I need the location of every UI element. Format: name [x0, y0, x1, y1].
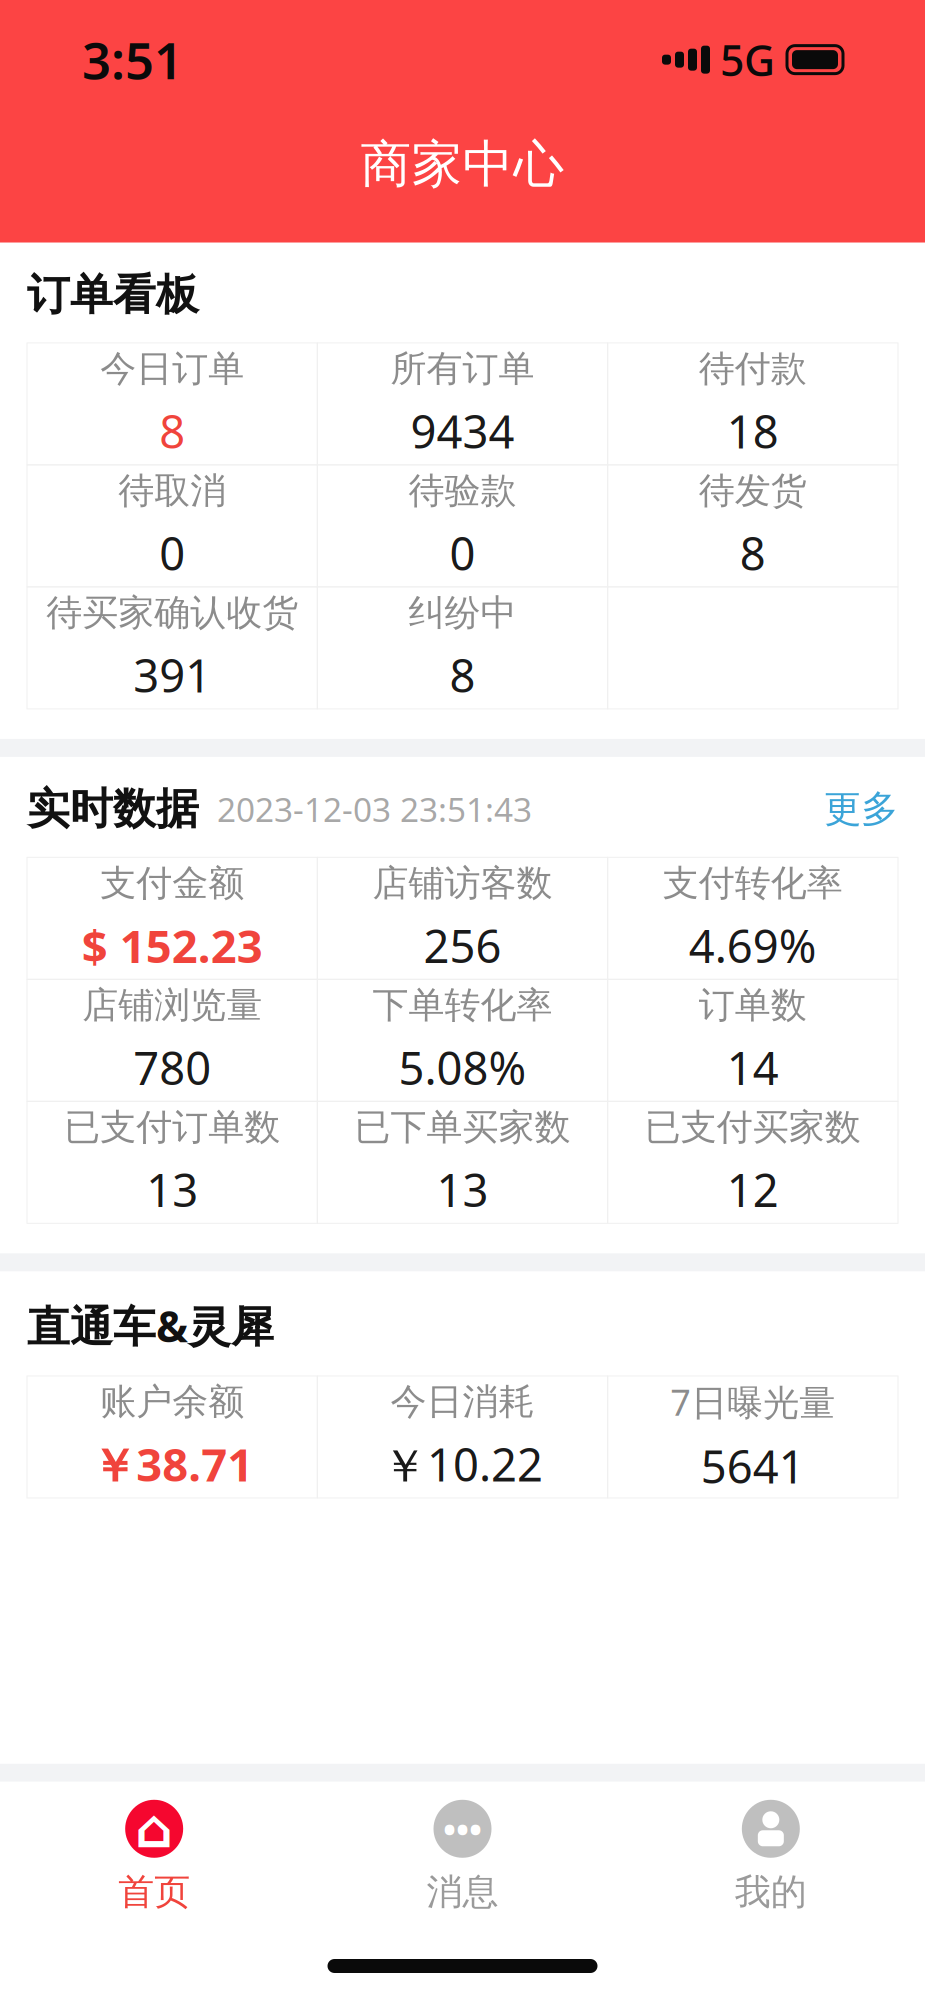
staticText: 账户余额 — [100, 1380, 244, 1424]
button[interactable]: 待买家确认收货 — [27, 587, 317, 709]
button[interactable]: 已支付订单数 — [27, 1101, 317, 1223]
button[interactable]: 店铺浏览量 — [27, 979, 317, 1101]
staticText: 商家中心 — [360, 133, 564, 195]
staticText: 256 — [423, 915, 501, 975]
staticText: 3:51 — [82, 26, 183, 93]
button[interactable]: ••• — [308, 1782, 617, 1932]
staticText: 所有订单 — [390, 347, 534, 391]
staticText: 消息 — [426, 1870, 498, 1914]
button[interactable]: 我的 — [617, 1782, 925, 1932]
staticText: $ 152.23 — [82, 915, 263, 975]
staticText: 待取消 — [118, 469, 226, 513]
staticText: 支付转化率 — [663, 861, 843, 905]
button[interactable]: 下单转化率 — [317, 979, 608, 1101]
button[interactable]: 今日订单 — [27, 343, 317, 465]
staticText: 5G — [720, 31, 775, 88]
button[interactable]: 今日消耗 — [317, 1376, 608, 1498]
staticText: 8 — [449, 645, 475, 705]
staticText: 8 — [740, 523, 766, 583]
staticText: 8 — [159, 401, 185, 461]
staticText: 4.69% — [689, 915, 817, 975]
staticText: 店铺访客数 — [372, 861, 552, 905]
staticText: ⌂ — [135, 1798, 173, 1859]
button[interactable]: 待验款 — [317, 465, 608, 587]
staticText: 5641 — [701, 1436, 805, 1496]
staticText: 13 — [436, 1159, 488, 1219]
staticText: 780 — [133, 1037, 211, 1097]
staticText: 9434 — [410, 401, 514, 461]
staticText: 下单转化率 — [372, 983, 552, 1027]
button[interactable]: 店铺访客数 — [317, 857, 608, 979]
staticText: 已下单买家数 — [354, 1105, 570, 1149]
staticText: 待付款 — [699, 347, 807, 391]
button[interactable]: 已支付买家数 — [608, 1101, 898, 1223]
staticText: ￥38.71 — [91, 1434, 253, 1494]
staticText: 纠纷中 — [408, 591, 516, 635]
button[interactable]: 订单数 — [608, 979, 898, 1101]
staticText: 已支付买家数 — [645, 1105, 861, 1149]
staticText: 今日订单 — [100, 347, 244, 391]
staticText: 首页 — [118, 1870, 190, 1914]
staticText: 待验款 — [408, 469, 516, 513]
staticText: 7日曝光量 — [670, 1378, 835, 1426]
staticText: 支付金额 — [100, 861, 244, 905]
staticText: 已支付订单数 — [64, 1105, 280, 1149]
staticText: 今日消耗 — [390, 1380, 534, 1424]
button[interactable]: 所有订单 — [317, 343, 608, 465]
button[interactable]: 已下单买家数 — [317, 1101, 608, 1223]
button[interactable]: 账户余额 — [27, 1376, 317, 1498]
staticText: 我的 — [735, 1870, 807, 1914]
staticText: 待买家确认收货 — [46, 591, 298, 635]
staticText: 13 — [146, 1159, 198, 1219]
staticText: 0 — [449, 523, 475, 583]
staticText: 12 — [727, 1159, 779, 1219]
staticText: 店铺浏览量 — [82, 983, 262, 1027]
staticText: 更多 — [824, 786, 898, 832]
button[interactable]: 更多 — [824, 786, 898, 832]
button[interactable]: 支付转化率 — [608, 857, 898, 979]
staticText: 5.08% — [398, 1037, 526, 1097]
staticText: 0 — [159, 523, 185, 583]
staticText: 2023-12-03 23:51:43 — [217, 787, 532, 831]
staticText: 391 — [133, 645, 211, 705]
staticText: ￥10.22 — [382, 1434, 543, 1494]
button[interactable]: 待付款 — [608, 343, 898, 465]
button[interactable]: 待取消 — [27, 465, 317, 587]
button[interactable]: 支付金额 — [27, 857, 317, 979]
staticText: 实时数据 — [27, 783, 199, 835]
button[interactable]: 纠纷中 — [317, 587, 608, 709]
staticText: 14 — [727, 1037, 779, 1097]
staticText: 订单数 — [699, 983, 807, 1027]
staticText: 待发货 — [699, 469, 807, 513]
staticText: ••• — [443, 1806, 482, 1852]
button[interactable]: 待发货 — [608, 465, 898, 587]
button[interactable]: ⌂ — [0, 1782, 308, 1932]
button[interactable]: 7日曝光量 — [608, 1376, 898, 1498]
staticText: 订单看板 — [27, 268, 199, 321]
staticText: 直通车&灵犀 — [27, 1297, 274, 1354]
staticText: 18 — [727, 401, 779, 461]
